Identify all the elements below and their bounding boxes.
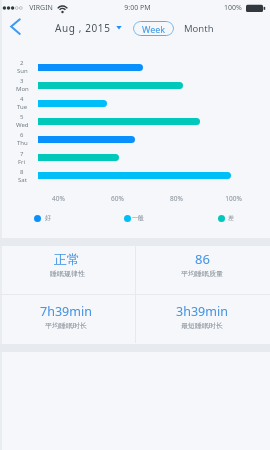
staticText: 差 bbox=[228, 214, 234, 222]
button[interactable]: Month bbox=[182, 19, 215, 38]
staticText: Sun bbox=[17, 67, 28, 75]
staticText: 最短睡眠时长 bbox=[181, 321, 223, 330]
staticText: 7h39min bbox=[40, 303, 92, 320]
staticText: Week bbox=[142, 23, 166, 35]
staticText: 80% bbox=[170, 194, 183, 203]
staticText: 3 bbox=[20, 77, 24, 85]
staticText: Aug , 2015 bbox=[55, 21, 111, 35]
button[interactable]: Aug , 2015 bbox=[40, 18, 126, 38]
staticText: Wed bbox=[16, 121, 29, 129]
staticText: 3h39min bbox=[176, 303, 228, 320]
staticText: 平均睡眠时长 bbox=[45, 321, 87, 330]
staticText: Fri bbox=[18, 158, 26, 166]
staticText: Mon bbox=[16, 85, 29, 93]
staticText: 40% bbox=[52, 194, 65, 203]
staticText: 一般 bbox=[132, 214, 144, 222]
staticText: 100% bbox=[225, 194, 242, 203]
staticText: 100% bbox=[224, 3, 242, 13]
staticText: 好 bbox=[45, 214, 51, 222]
staticText: 8 bbox=[20, 168, 24, 176]
staticText: 7 bbox=[20, 150, 24, 158]
staticText: VIRGIN bbox=[29, 3, 53, 13]
staticText: Sat bbox=[18, 176, 27, 184]
staticText: 6 bbox=[20, 131, 24, 139]
button[interactable] bbox=[0, 246, 135, 294]
staticText: 5 bbox=[20, 113, 24, 121]
staticText: Thu bbox=[17, 139, 28, 147]
staticText: 平均睡眠质量 bbox=[181, 269, 223, 278]
staticText: Tue bbox=[17, 103, 28, 111]
staticText: 睡眠规律性 bbox=[50, 269, 85, 278]
staticText: 2 bbox=[20, 59, 24, 67]
staticText: 9:00 PM bbox=[124, 3, 151, 13]
button[interactable]: Week bbox=[133, 21, 174, 36]
staticText: Month bbox=[184, 22, 214, 35]
staticText: 86 bbox=[195, 250, 210, 268]
button[interactable] bbox=[4, 16, 26, 38]
staticText: 60% bbox=[111, 194, 124, 203]
staticText: 4 bbox=[20, 95, 24, 103]
staticText: 正常 bbox=[54, 251, 80, 267]
